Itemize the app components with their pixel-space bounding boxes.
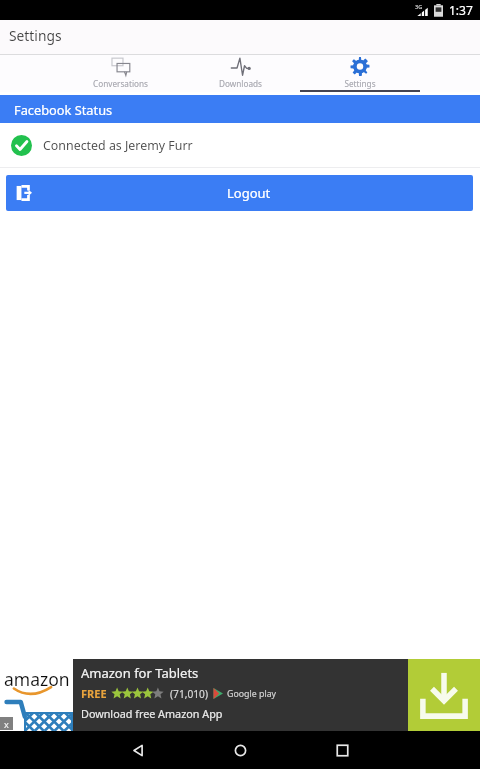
staticText: Logout (227, 184, 271, 202)
staticText: 3G (415, 3, 423, 10)
staticText: Facebook Status (14, 101, 113, 118)
staticText: Downloads (219, 78, 262, 89)
button[interactable]: Back (87, 731, 189, 769)
button[interactable]: Settings (300, 55, 420, 92)
staticText: Download free Amazon App (81, 706, 223, 721)
staticText: (71,010) (170, 687, 208, 701)
staticText: Google play (227, 688, 277, 700)
staticText: Settings (344, 78, 376, 89)
button[interactable]: Download (408, 659, 480, 731)
staticText: x (4, 718, 9, 730)
staticText: Settings (9, 26, 62, 45)
staticText: Connected as Jeremy Furr (43, 137, 193, 154)
button[interactable]: Close ad (0, 717, 13, 730)
button[interactable]: Downloads (180, 55, 300, 92)
staticText: FREE (81, 686, 107, 701)
button[interactable]: Connected as Jeremy Furr (0, 123, 480, 167)
button[interactable]: Recent apps (291, 731, 393, 769)
button[interactable]: Logout (6, 175, 473, 211)
button[interactable]: Home (189, 731, 291, 769)
staticText: 1:37 (449, 2, 473, 18)
button[interactable]: Conversations (60, 55, 180, 92)
staticText: Conversations (93, 78, 148, 89)
staticText: amazon (4, 667, 70, 691)
staticText: Amazon for Tablets (81, 664, 199, 682)
